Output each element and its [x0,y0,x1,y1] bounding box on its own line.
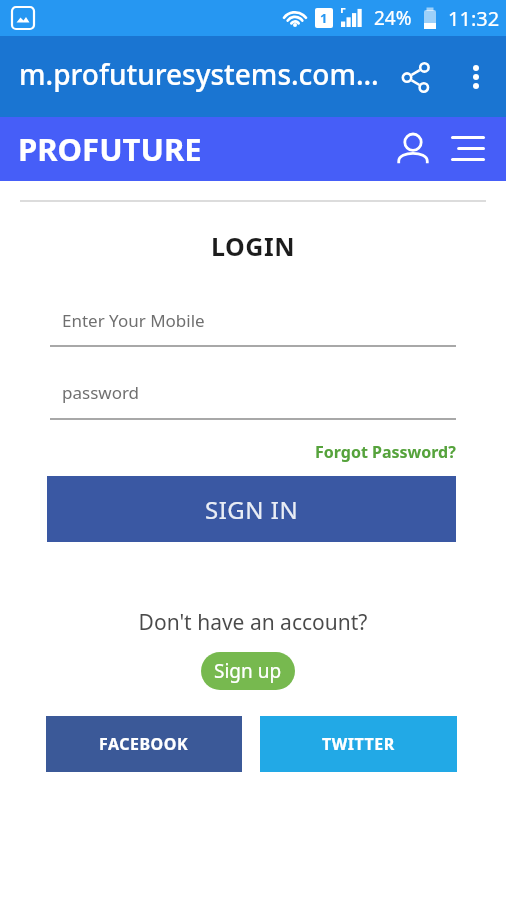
button[interactable]: SIGN IN [47,476,456,542]
button[interactable] [448,129,488,169]
staticText: LOGIN [0,229,506,263]
staticText: m.profuturesystems.com… [19,55,379,93]
staticText: 24% [374,5,412,31]
button[interactable]: Enter Your Mobile [50,309,456,347]
staticText: 11:32 [448,5,500,32]
staticText: FACEBOOK [99,733,189,755]
button[interactable] [394,130,432,168]
staticText: 1 [320,9,328,27]
button[interactable]: TWITTER [260,716,457,772]
staticText: password [62,381,140,404]
staticText: PROFUTURE [18,128,202,170]
button[interactable]: password [50,381,456,420]
button[interactable]: Sign up [201,652,295,690]
button[interactable] [398,59,434,95]
staticText: Sign up [214,658,282,684]
staticText: Don't have an account? [0,608,506,637]
staticText: SIGN IN [205,493,299,526]
staticText: TWITTER [322,733,395,755]
button[interactable]: Forgot Password? [315,441,456,463]
staticText: Enter Your Mobile [62,309,205,332]
button[interactable]: FACEBOOK [46,716,242,772]
button[interactable] [458,59,494,95]
